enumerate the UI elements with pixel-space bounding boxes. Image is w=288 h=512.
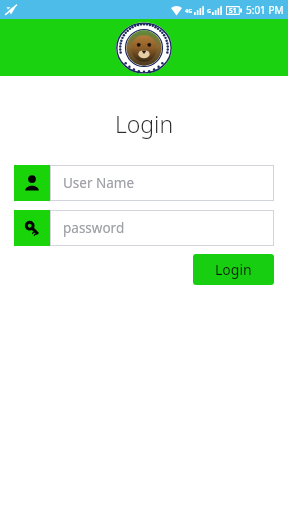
button[interactable]: Login: [193, 254, 274, 285]
button[interactable]: User name: [14, 165, 274, 201]
staticText: 5:01 PM: [246, 3, 284, 17]
other: User name: [14, 165, 50, 201]
staticText: Login: [215, 260, 252, 279]
staticText: User Name: [63, 174, 135, 192]
staticText: Login: [0, 108, 288, 139]
other: Password: [14, 210, 50, 246]
staticText: password: [63, 219, 125, 237]
staticText: 4G: [185, 7, 193, 14]
staticText: G: [207, 7, 211, 14]
staticText: 51: [229, 6, 237, 15]
button[interactable]: Password: [14, 210, 274, 246]
